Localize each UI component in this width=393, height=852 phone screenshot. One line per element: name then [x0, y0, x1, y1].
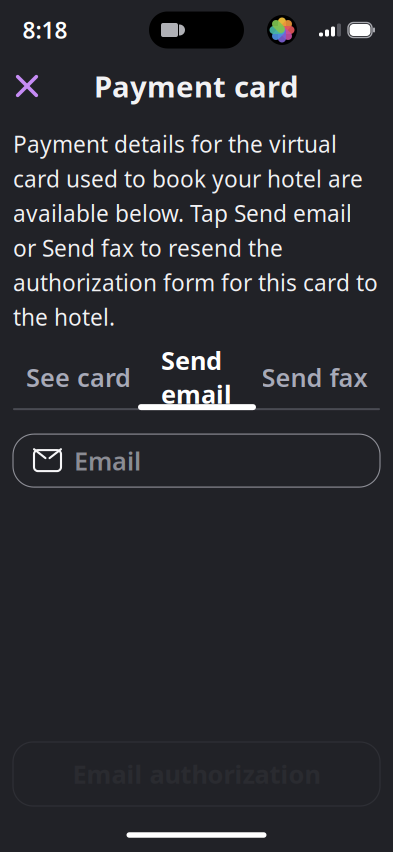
button[interactable]: Send fax [255, 354, 373, 400]
staticText: Email [74, 444, 141, 477]
staticText: Send fax [261, 360, 367, 394]
staticText: See card [26, 360, 131, 394]
staticText: 8:18 [22, 15, 67, 45]
button[interactable]: Email [13, 434, 380, 487]
staticText: Payment details for the virtual card use… [13, 129, 378, 332]
button[interactable]: Close [2, 61, 52, 111]
staticText: Payment card [94, 66, 299, 105]
staticText: Send email [161, 343, 232, 411]
staticText: Email authorization [72, 757, 320, 791]
button[interactable]: See card [19, 354, 137, 400]
button[interactable]: Send email [137, 354, 255, 400]
